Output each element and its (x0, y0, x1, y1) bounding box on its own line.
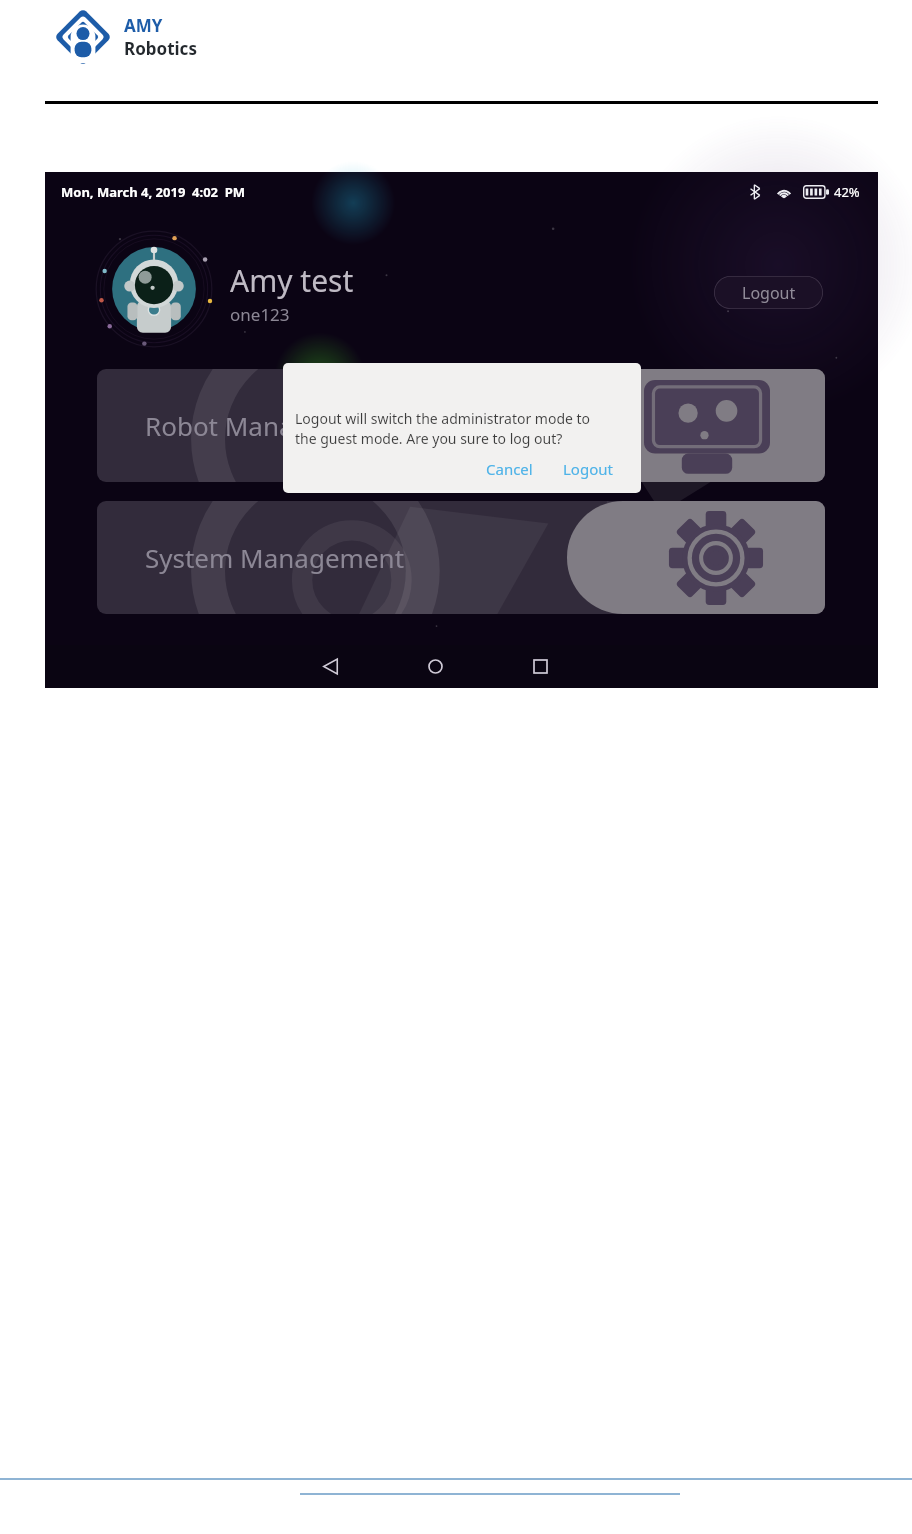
staticText: Mon, March 4, 2019 4:02 PM (61, 183, 246, 201)
staticText: Cancel (486, 459, 533, 479)
staticText: Logout (742, 282, 796, 304)
button[interactable]: Logout (555, 455, 621, 483)
staticText: Robotics (124, 37, 197, 60)
staticText: AMY (124, 14, 163, 37)
staticText: Logout (563, 459, 613, 479)
button[interactable]: Back (307, 645, 353, 688)
staticText: 42% (834, 183, 860, 201)
staticText: Logout will switch the administrator mod… (295, 409, 605, 448)
button[interactable]: Recent apps (517, 645, 563, 688)
button[interactable]: System Management (97, 501, 825, 614)
staticText: Amy test (230, 260, 354, 301)
staticText: Robot Management (145, 408, 389, 443)
button[interactable]: Logout (714, 276, 823, 309)
button[interactable]: Home (412, 645, 458, 688)
staticText: one123 (230, 303, 290, 326)
button[interactable]: Cancel (478, 455, 541, 483)
button[interactable]: Robot Management (97, 369, 825, 482)
staticText: System Management (145, 540, 405, 575)
